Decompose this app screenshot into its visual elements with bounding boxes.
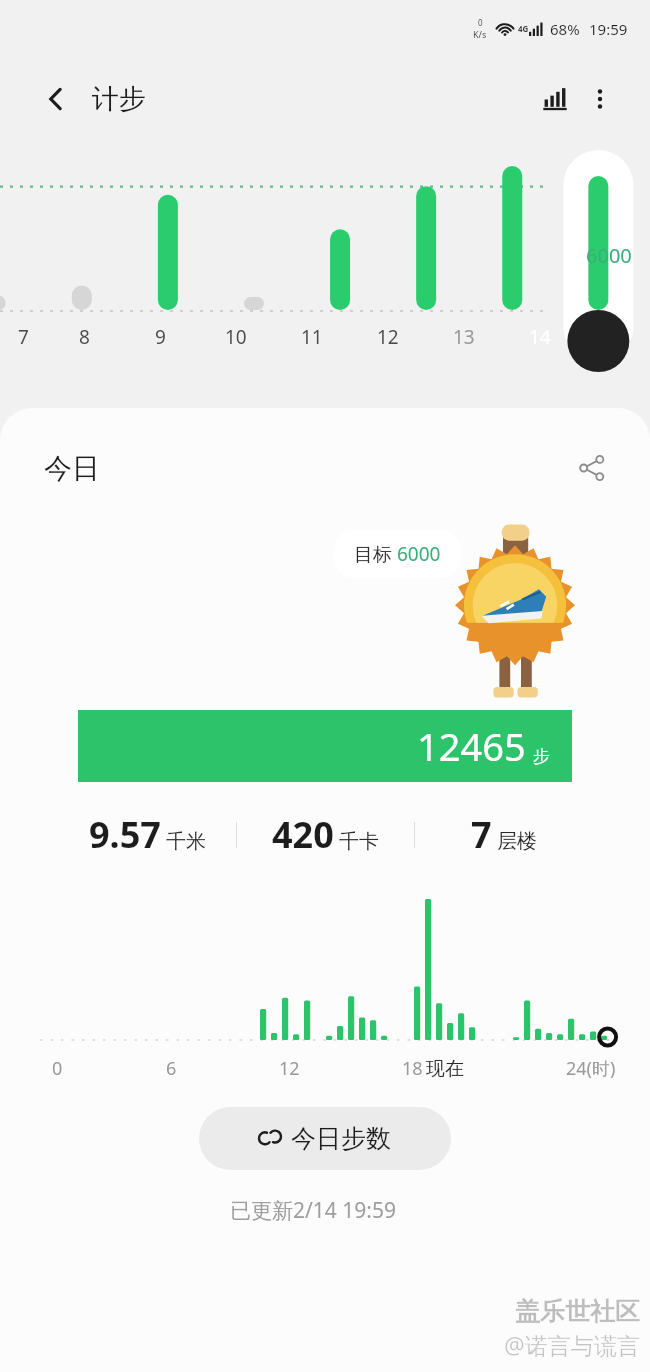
staticText: 12465 bbox=[417, 720, 526, 772]
button[interactable]: Back bbox=[34, 77, 78, 121]
button[interactable]: 12465 bbox=[78, 710, 572, 782]
staticText: 步 bbox=[533, 746, 550, 767]
staticText: K/s bbox=[473, 28, 487, 40]
button[interactable]: More options bbox=[578, 77, 622, 121]
staticText: 6000 bbox=[586, 242, 632, 269]
staticText: 68% bbox=[550, 19, 580, 39]
staticText: 6000 bbox=[397, 541, 441, 567]
staticText: 9.57 bbox=[89, 810, 161, 859]
staticText: 千米 bbox=[166, 829, 206, 854]
staticText: 14 bbox=[529, 324, 551, 350]
staticText: 12 bbox=[279, 1056, 300, 1081]
staticText: 目标 bbox=[354, 541, 397, 567]
staticText: 今日 bbox=[44, 451, 100, 486]
staticText: 19:59 bbox=[589, 19, 628, 39]
staticText: 10 bbox=[225, 324, 247, 350]
staticText: 千卡 bbox=[339, 829, 379, 854]
staticText: 计步 bbox=[92, 82, 146, 116]
staticText: 9 bbox=[155, 324, 166, 350]
staticText: 6 bbox=[166, 1056, 177, 1081]
staticText: 已更新2/14 19:59 bbox=[230, 1196, 396, 1225]
staticText: 现在 bbox=[426, 1057, 464, 1081]
staticText: 7 bbox=[18, 324, 29, 350]
staticText: 420 bbox=[272, 810, 334, 859]
button[interactable]: Share bbox=[568, 444, 616, 492]
button[interactable]: 7 bbox=[415, 810, 592, 859]
staticText: 11 bbox=[301, 324, 323, 350]
staticText: 今日步数 bbox=[291, 1123, 391, 1154]
button[interactable]: 今日步数 bbox=[199, 1107, 451, 1170]
staticText: 0 bbox=[478, 17, 483, 28]
button[interactable]: Statistics bbox=[532, 76, 578, 122]
staticText: 0 bbox=[52, 1056, 63, 1081]
staticText: 18 bbox=[402, 1056, 423, 1081]
staticText: 13 bbox=[453, 324, 475, 350]
staticText: 8 bbox=[79, 324, 90, 350]
staticText: 盖乐世社区 bbox=[515, 1296, 640, 1327]
staticText: 24(时) bbox=[566, 1056, 616, 1081]
staticText: 4G bbox=[518, 23, 529, 34]
button[interactable]: 420 bbox=[237, 810, 414, 859]
staticText: 12 bbox=[377, 324, 399, 350]
staticText: 7 bbox=[471, 810, 492, 859]
staticText: @诺言与谎言 bbox=[504, 1329, 640, 1360]
staticText: 层楼 bbox=[497, 829, 537, 854]
button[interactable]: 9.57 bbox=[58, 810, 236, 859]
